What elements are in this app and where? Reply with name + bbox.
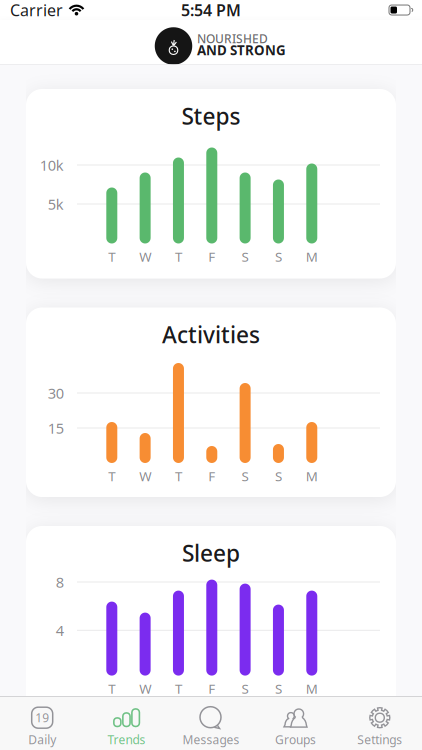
staticText: Steps: [181, 101, 240, 131]
staticText: S: [242, 467, 249, 485]
staticText: F: [208, 248, 215, 265]
staticText: Activities: [162, 319, 260, 349]
staticText: T: [108, 248, 115, 265]
staticText: S: [275, 680, 282, 697]
staticText: Carrier: [10, 0, 63, 21]
staticText: T: [175, 467, 182, 485]
staticText: Messages: [182, 732, 239, 748]
button[interactable]: Trends: [84, 697, 169, 750]
staticText: 19: [35, 710, 49, 726]
staticText: Groups: [275, 732, 316, 748]
staticText: Sleep: [182, 538, 240, 568]
staticText: S: [275, 248, 282, 265]
staticText: Trends: [108, 732, 146, 748]
staticText: F: [208, 467, 215, 485]
button[interactable]: 19: [0, 697, 84, 750]
staticText: 5:54 PM: [181, 0, 241, 21]
staticText: M: [306, 680, 318, 697]
staticText: NOURISHED: [197, 30, 268, 46]
staticText: Settings: [357, 732, 402, 748]
button[interactable]: Messages: [169, 697, 253, 750]
staticText: S: [242, 248, 249, 265]
staticText: T: [175, 680, 182, 697]
staticText: Daily: [28, 732, 56, 748]
staticText: AND STRONG: [197, 41, 286, 59]
staticText: 4: [56, 621, 64, 640]
staticText: T: [175, 248, 182, 265]
staticText: S: [242, 680, 249, 697]
staticText: W: [139, 680, 151, 697]
staticText: 30: [48, 383, 64, 403]
staticText: S: [275, 467, 282, 485]
staticText: W: [139, 467, 151, 485]
button[interactable]: Settings: [338, 697, 422, 750]
staticText: 5k: [48, 194, 64, 214]
staticText: 10k: [40, 155, 64, 175]
staticText: T: [108, 680, 115, 697]
button[interactable]: Groups: [253, 697, 338, 750]
staticText: T: [108, 467, 115, 485]
staticText: 8: [56, 572, 64, 592]
staticText: 15: [48, 418, 64, 438]
staticText: M: [306, 467, 318, 485]
staticText: F: [208, 680, 215, 697]
staticText: M: [306, 248, 318, 265]
staticText: W: [139, 248, 151, 265]
